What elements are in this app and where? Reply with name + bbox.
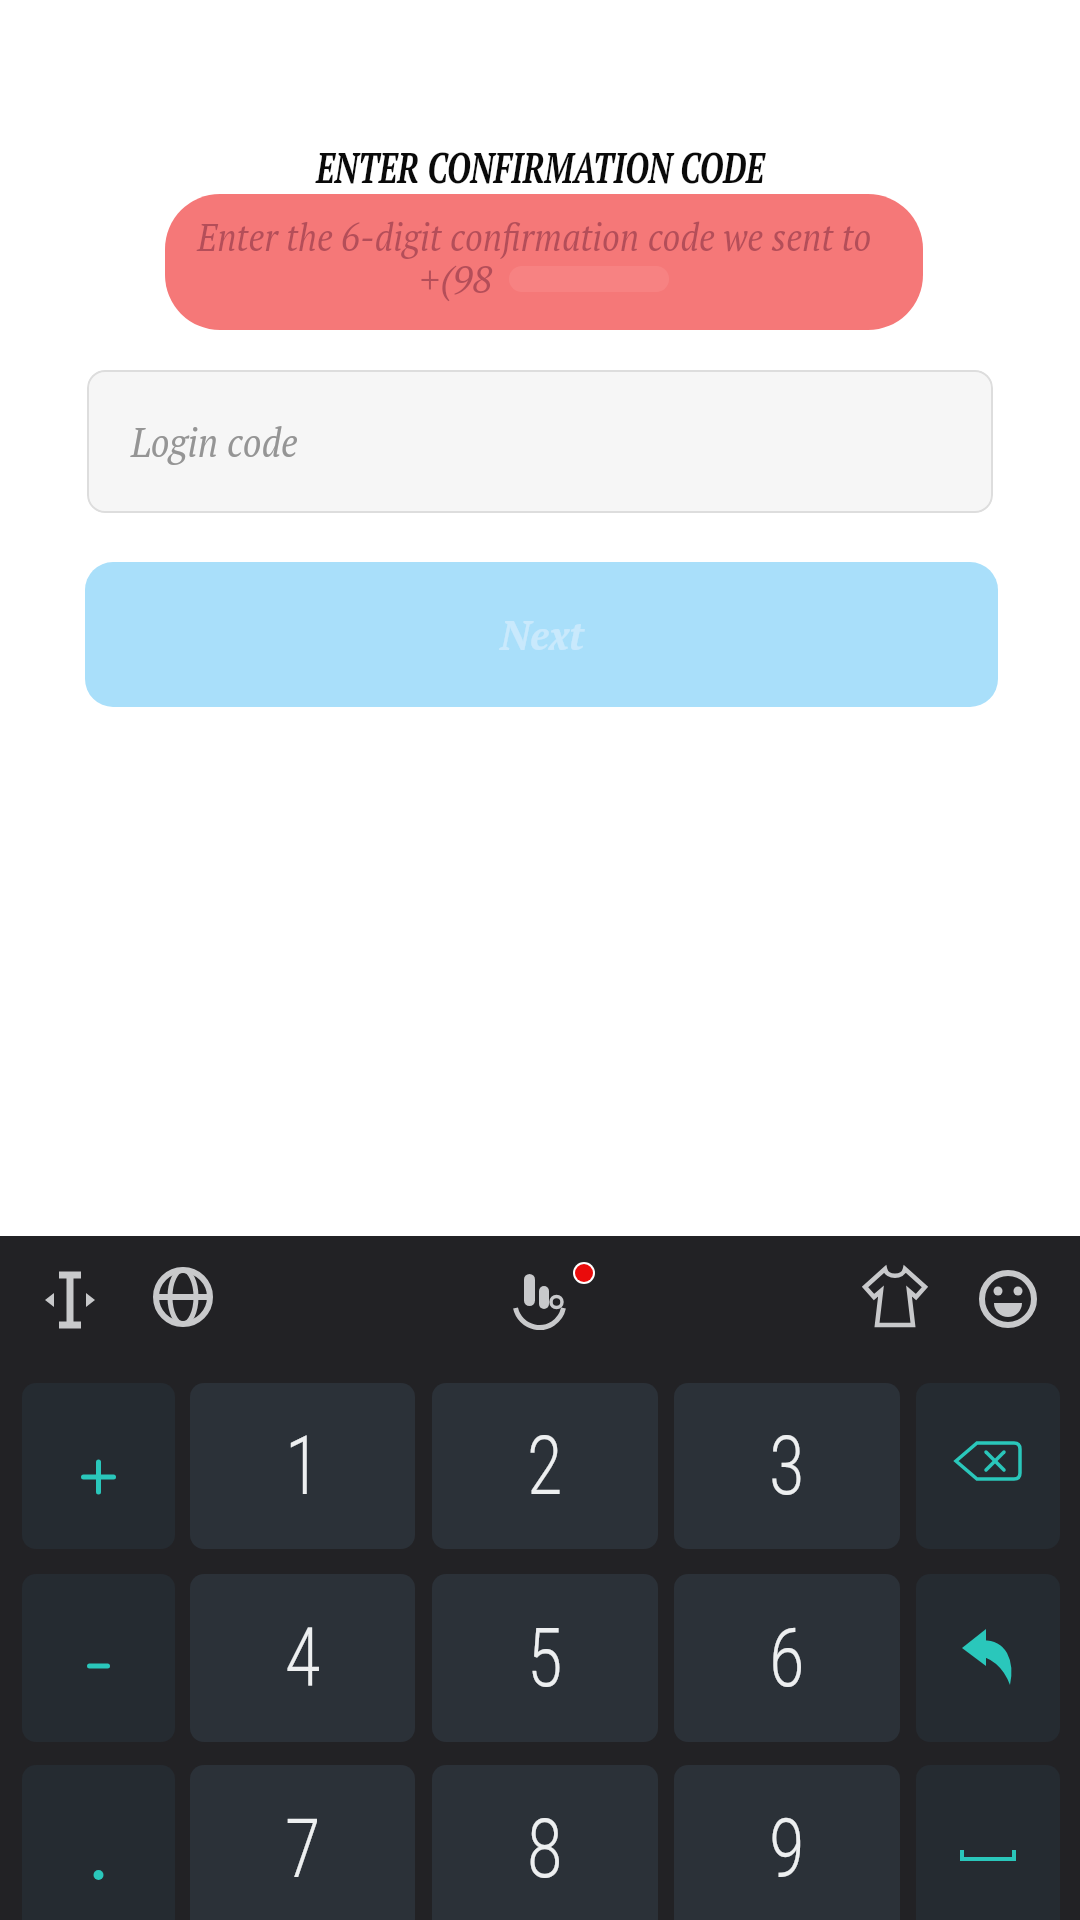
button[interactable]: 7 (190, 1765, 415, 1920)
button[interactable]: Next (85, 562, 998, 707)
button[interactable]: 4 (190, 1574, 415, 1742)
button[interactable]: 6 (674, 1574, 900, 1742)
staticText: Enter the 6-digit confirmation code we s… (197, 212, 872, 262)
staticText: ENTER CONFIRMATION CODE (316, 139, 765, 195)
staticText: +(98 (420, 254, 493, 304)
staticText: 9 (769, 1801, 804, 1897)
button[interactable] (500, 1261, 610, 1341)
staticText: 1 (285, 1418, 320, 1514)
button[interactable]: 1 (190, 1383, 415, 1549)
button[interactable] (916, 1574, 1060, 1742)
button[interactable] (30, 1260, 110, 1340)
button[interactable] (22, 1765, 175, 1920)
button[interactable]: Login code (87, 370, 993, 513)
staticText: Next (500, 608, 584, 661)
staticText: 5 (527, 1610, 562, 1706)
button[interactable]: 8 (432, 1765, 658, 1920)
button[interactable]: 9 (674, 1765, 900, 1920)
button[interactable]: 5 (432, 1574, 658, 1742)
button[interactable] (150, 1264, 216, 1330)
staticText: 8 (527, 1801, 562, 1897)
staticText: 2 (527, 1418, 562, 1514)
button[interactable]: 2 (432, 1383, 658, 1549)
staticText: Login code (131, 415, 298, 468)
button[interactable] (22, 1574, 175, 1742)
staticText: 7 (285, 1801, 320, 1897)
staticText: 3 (769, 1418, 804, 1514)
button[interactable] (862, 1266, 930, 1328)
button[interactable] (916, 1765, 1060, 1920)
button[interactable] (978, 1269, 1038, 1329)
button[interactable] (22, 1383, 175, 1549)
button[interactable]: 3 (674, 1383, 900, 1549)
staticText: 4 (285, 1610, 320, 1706)
button[interactable] (916, 1383, 1060, 1549)
staticText: 6 (769, 1610, 804, 1706)
